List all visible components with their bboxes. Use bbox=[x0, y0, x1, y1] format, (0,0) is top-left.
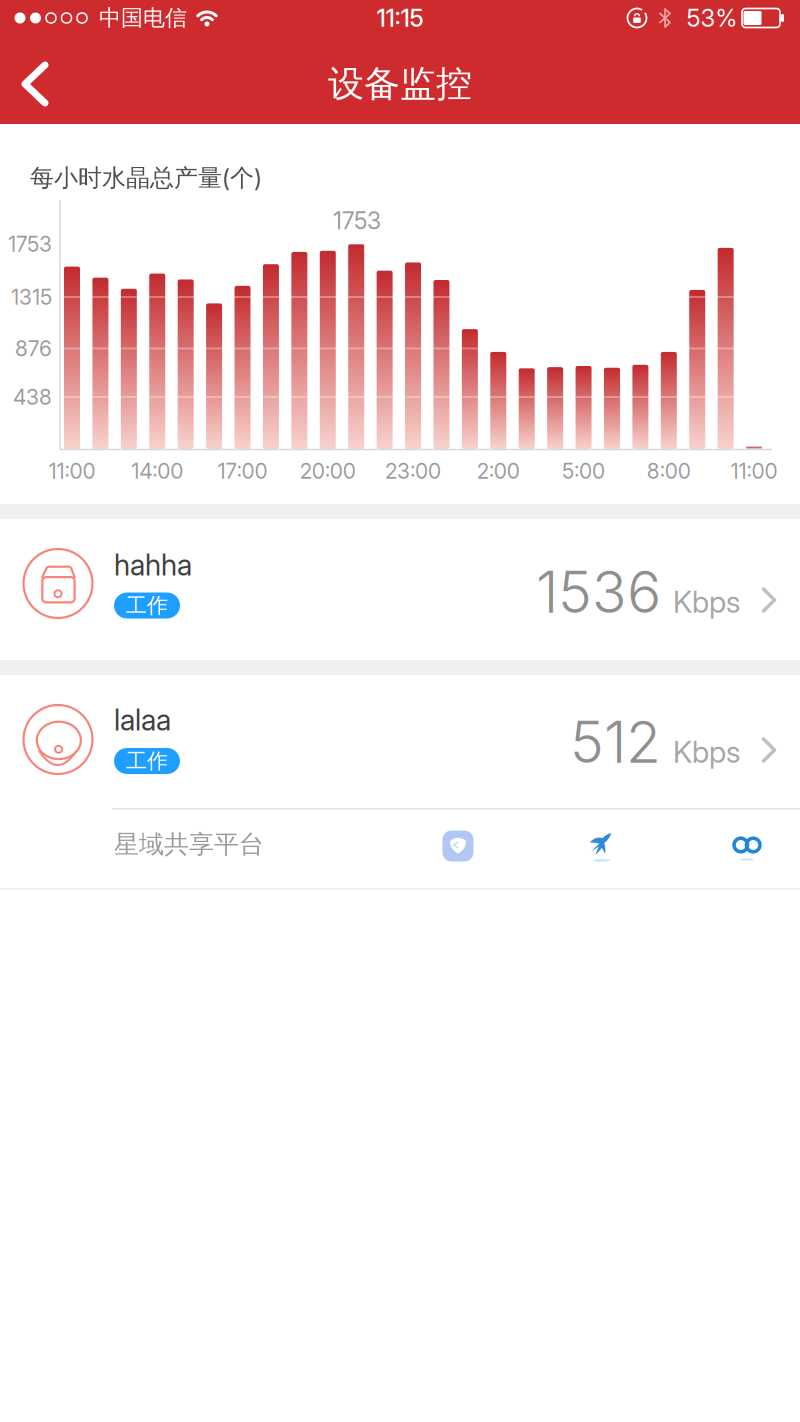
staticText: 512 bbox=[570, 708, 661, 776]
staticText: 工作 bbox=[126, 748, 168, 774]
staticText: Kbps bbox=[673, 584, 740, 619]
staticText: 1315 bbox=[11, 285, 52, 309]
staticText: 438 bbox=[13, 385, 52, 409]
staticText: 14:00 bbox=[131, 459, 183, 483]
button[interactable]: 星域共享平台 App bbox=[436, 824, 480, 868]
staticText: 2:00 bbox=[477, 459, 520, 483]
button[interactable]: Back bbox=[6, 49, 66, 119]
staticText: 星域共享平台 bbox=[114, 829, 264, 860]
staticText: 20:00 bbox=[300, 459, 356, 483]
staticText: 每小时水晶总产量(个) bbox=[30, 163, 262, 193]
staticText: 11:00 bbox=[48, 459, 95, 483]
staticText: 1753 bbox=[333, 207, 381, 234]
staticText: 5:00 bbox=[562, 459, 605, 483]
button[interactable]: 无限 bbox=[725, 824, 769, 868]
staticText: 876 bbox=[15, 336, 52, 361]
button[interactable]: 迅雷 bbox=[580, 824, 624, 868]
staticText: 工作 bbox=[126, 593, 168, 618]
staticText: 1536 bbox=[536, 558, 661, 626]
staticText: 53% bbox=[686, 4, 737, 32]
staticText: 中国电信 bbox=[99, 4, 187, 31]
staticText: 11:00 bbox=[731, 459, 778, 483]
staticText: Kbps bbox=[673, 734, 740, 769]
staticText: 1753 bbox=[8, 232, 52, 256]
button[interactable]: hahha bbox=[0, 519, 800, 660]
staticText: hahha bbox=[114, 548, 192, 582]
staticText: 设备监控 bbox=[328, 62, 472, 106]
staticText: 8:00 bbox=[647, 459, 691, 483]
button[interactable]: lalaa bbox=[0, 675, 800, 808]
staticText: 11:15 bbox=[376, 4, 423, 32]
staticText: lalaa bbox=[114, 703, 171, 737]
staticText: 23:00 bbox=[385, 459, 441, 483]
staticText: 17:00 bbox=[217, 459, 267, 483]
